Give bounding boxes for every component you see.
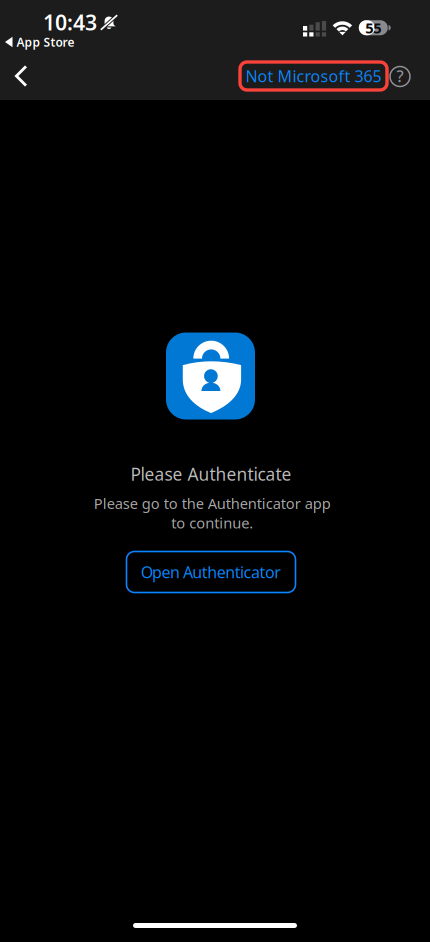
button[interactable]: App Store: [0, 32, 82, 52]
staticText: 10:43: [43, 8, 97, 36]
staticText: Not Microsoft 365: [245, 65, 381, 87]
button[interactable]: Not Microsoft 365: [236, 58, 391, 94]
staticText: 55: [365, 18, 381, 37]
staticText: Please go to the Authenticator app to co…: [93, 493, 330, 532]
button[interactable]: Open Authenticator: [126, 551, 295, 592]
staticText: Please Authenticate: [130, 462, 291, 485]
staticText: App Store: [16, 34, 74, 50]
staticText: Open Authenticator: [141, 561, 281, 583]
button[interactable]: Help: [384, 60, 416, 92]
button[interactable]: Back: [0, 54, 45, 98]
staticText: ?: [396, 65, 403, 87]
